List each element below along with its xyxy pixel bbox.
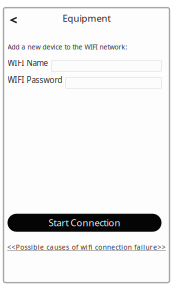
- staticText: Start Connection: [48, 216, 120, 229]
- staticText: WIFI Password: [7, 75, 62, 85]
- staticText: WIFI Name: [7, 58, 48, 68]
- staticText: Add a new device to the WIFI network:: [7, 43, 127, 51]
- staticText: Equipment: [62, 12, 110, 24]
- button[interactable]: <<Possible causes of wifi connection fai…: [3, 243, 169, 252]
- button[interactable]: Back: [3, 6, 24, 31]
- staticText: <<Possible causes of wifi connection fai…: [7, 243, 166, 252]
- button[interactable]: Start Connection: [3, 214, 169, 232]
